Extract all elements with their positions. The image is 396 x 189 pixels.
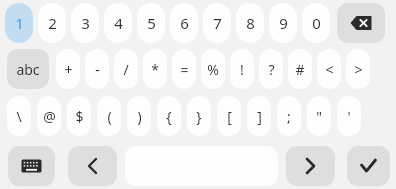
button[interactable]: 7 xyxy=(203,3,231,43)
button[interactable]: 0 xyxy=(302,3,330,43)
button[interactable]: # xyxy=(288,49,312,89)
button[interactable]: 6 xyxy=(170,3,198,43)
button[interactable]: / xyxy=(114,49,138,89)
staticText: ' xyxy=(347,107,351,126)
button[interactable]: 4 xyxy=(104,3,132,43)
button[interactable]: " xyxy=(307,96,331,136)
button[interactable]: [ xyxy=(217,96,241,136)
button[interactable]: ) xyxy=(127,96,151,136)
staticText: 9 xyxy=(279,13,288,33)
staticText: ! xyxy=(240,60,244,79)
staticText: ; xyxy=(287,107,291,126)
button[interactable]: + xyxy=(56,49,80,89)
staticText: 6 xyxy=(180,13,189,33)
button[interactable]: ; xyxy=(277,96,301,136)
staticText: $ xyxy=(75,107,84,126)
button[interactable]: ] xyxy=(247,96,271,136)
staticText: 7 xyxy=(213,13,222,33)
button[interactable]: > xyxy=(346,49,370,89)
button[interactable]: $ xyxy=(67,96,91,136)
staticText: < xyxy=(325,60,334,79)
staticText: % xyxy=(207,60,219,79)
staticText: abc xyxy=(16,60,40,79)
button[interactable]: abc xyxy=(7,49,49,89)
button[interactable]: * xyxy=(143,49,167,89)
button[interactable]: 1 xyxy=(5,3,33,43)
button[interactable]: } xyxy=(187,96,211,136)
button[interactable]: { xyxy=(157,96,181,136)
staticText: } xyxy=(196,107,202,126)
staticText: 5 xyxy=(147,13,156,33)
button[interactable]: % xyxy=(201,49,225,89)
button[interactable]: \ xyxy=(7,96,31,136)
staticText: 3 xyxy=(81,13,90,33)
button[interactable]: 3 xyxy=(71,3,99,43)
button[interactable]: ! xyxy=(230,49,254,89)
button[interactable]: ( xyxy=(97,96,121,136)
staticText: # xyxy=(295,60,305,79)
staticText: / xyxy=(123,60,129,79)
button[interactable]: @ xyxy=(37,96,61,136)
staticText: ( xyxy=(107,107,112,126)
staticText: 0 xyxy=(312,13,321,33)
staticText: ? xyxy=(268,60,275,79)
staticText: { xyxy=(166,107,172,126)
staticText: ] xyxy=(257,107,262,126)
button[interactable]: = xyxy=(172,49,196,89)
button[interactable]: Switch keyboard xyxy=(8,146,55,186)
staticText: [ xyxy=(227,107,232,126)
staticText: + xyxy=(64,60,73,79)
button[interactable]: 9 xyxy=(269,3,297,43)
button[interactable]: Backspace xyxy=(337,3,385,43)
button[interactable]: 8 xyxy=(236,3,264,43)
button[interactable]: < xyxy=(317,49,341,89)
button[interactable]: - xyxy=(85,49,109,89)
staticText: 1 xyxy=(15,13,24,33)
button[interactable]: Next xyxy=(286,146,335,186)
staticText: * xyxy=(151,60,159,79)
button[interactable]: 2 xyxy=(38,3,66,43)
button[interactable]: ' xyxy=(337,96,361,136)
staticText: - xyxy=(95,60,100,79)
button[interactable]: Back xyxy=(68,146,117,186)
button[interactable]: ? xyxy=(259,49,283,89)
staticText: ) xyxy=(137,107,142,126)
staticText: @ xyxy=(43,107,56,126)
button[interactable]: 5 xyxy=(137,3,165,43)
button[interactable]: Done xyxy=(347,146,390,186)
staticText: > xyxy=(354,60,363,79)
staticText: 4 xyxy=(114,13,123,33)
staticText: 8 xyxy=(246,13,255,33)
staticText: 2 xyxy=(48,13,57,33)
staticText: \ xyxy=(16,107,22,126)
staticText: " xyxy=(316,107,322,126)
staticText: = xyxy=(180,60,189,79)
